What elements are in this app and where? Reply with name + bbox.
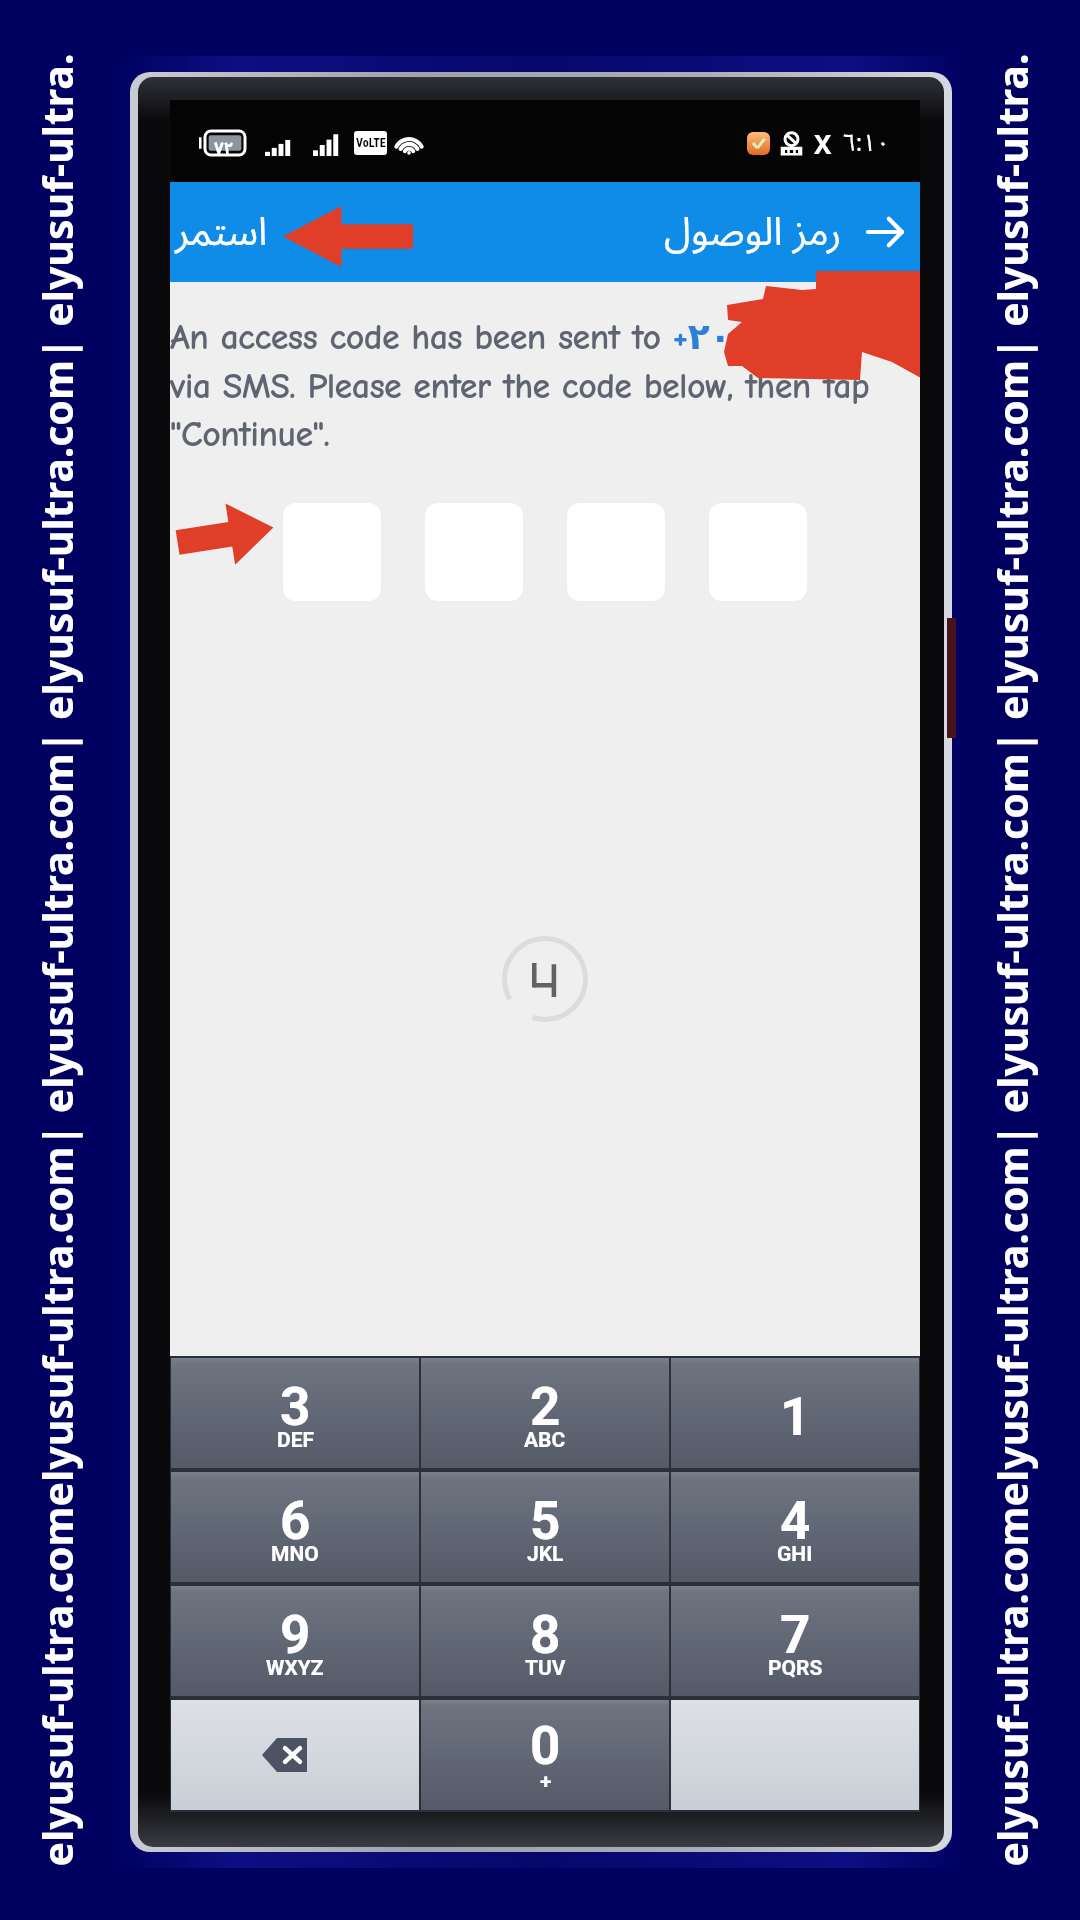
staticText: 7 [780,1604,811,1666]
button[interactable] [671,1700,919,1810]
button[interactable]: استمر [175,191,268,273]
staticText: MNO [271,1542,319,1567]
other: Battery 72 percent [199,131,245,155]
staticText: ٧٢ [214,131,234,155]
staticText: 4 [780,1490,811,1552]
button[interactable]: 8 [421,1586,669,1696]
other: 4 seconds remaining [532,963,558,997]
button[interactable]: 7 [671,1586,919,1696]
other: Backspace [262,1738,312,1772]
staticText: 9 [280,1604,311,1666]
staticText: 1 [780,1386,811,1448]
staticText: 8 [530,1604,561,1666]
staticText: JKL [527,1542,564,1567]
button[interactable]: 0 [421,1700,669,1810]
staticText: elyusuf-ultra.comelyusuf-ultra.com| elyu… [29,0,85,1920]
staticText: 3 [280,1376,311,1438]
staticText: 0 [530,1715,561,1777]
staticText: ٦:١٠ [842,118,890,169]
staticText: WXYZ [266,1656,324,1681]
staticText: PQRS [768,1656,823,1681]
staticText: استمر [175,191,268,273]
staticText: VoLTE [356,136,386,150]
staticText: GHI [777,1542,813,1567]
staticText: 5 [530,1490,561,1552]
button[interactable]: رمز الوصول [664,191,902,273]
staticText: An access code has been sent to +٢٠ via … [170,316,910,455]
staticText: X [814,126,832,161]
staticText: 6 [280,1490,311,1552]
button[interactable]: 3 [171,1358,419,1468]
staticText: 2 [530,1376,561,1438]
other: Back [868,217,902,247]
button[interactable]: 9 [171,1586,419,1696]
staticText: TUV [525,1656,566,1681]
staticText: DEF [277,1428,314,1453]
staticText: ABC [524,1428,566,1453]
button[interactable]: 5 [421,1472,669,1582]
button[interactable]: 1 [671,1358,919,1468]
staticText: + [540,1770,552,1795]
button[interactable]: 4 [671,1472,919,1582]
button[interactable]: Backspace [171,1700,419,1810]
staticText: رمز الوصول [664,191,842,273]
button[interactable]: 6 [171,1472,419,1582]
staticText: elyusuf-ultra.comelyusuf-ultra.com| elyu… [984,0,1040,1920]
other: Muted [778,130,805,157]
button[interactable]: 2 [421,1358,669,1468]
